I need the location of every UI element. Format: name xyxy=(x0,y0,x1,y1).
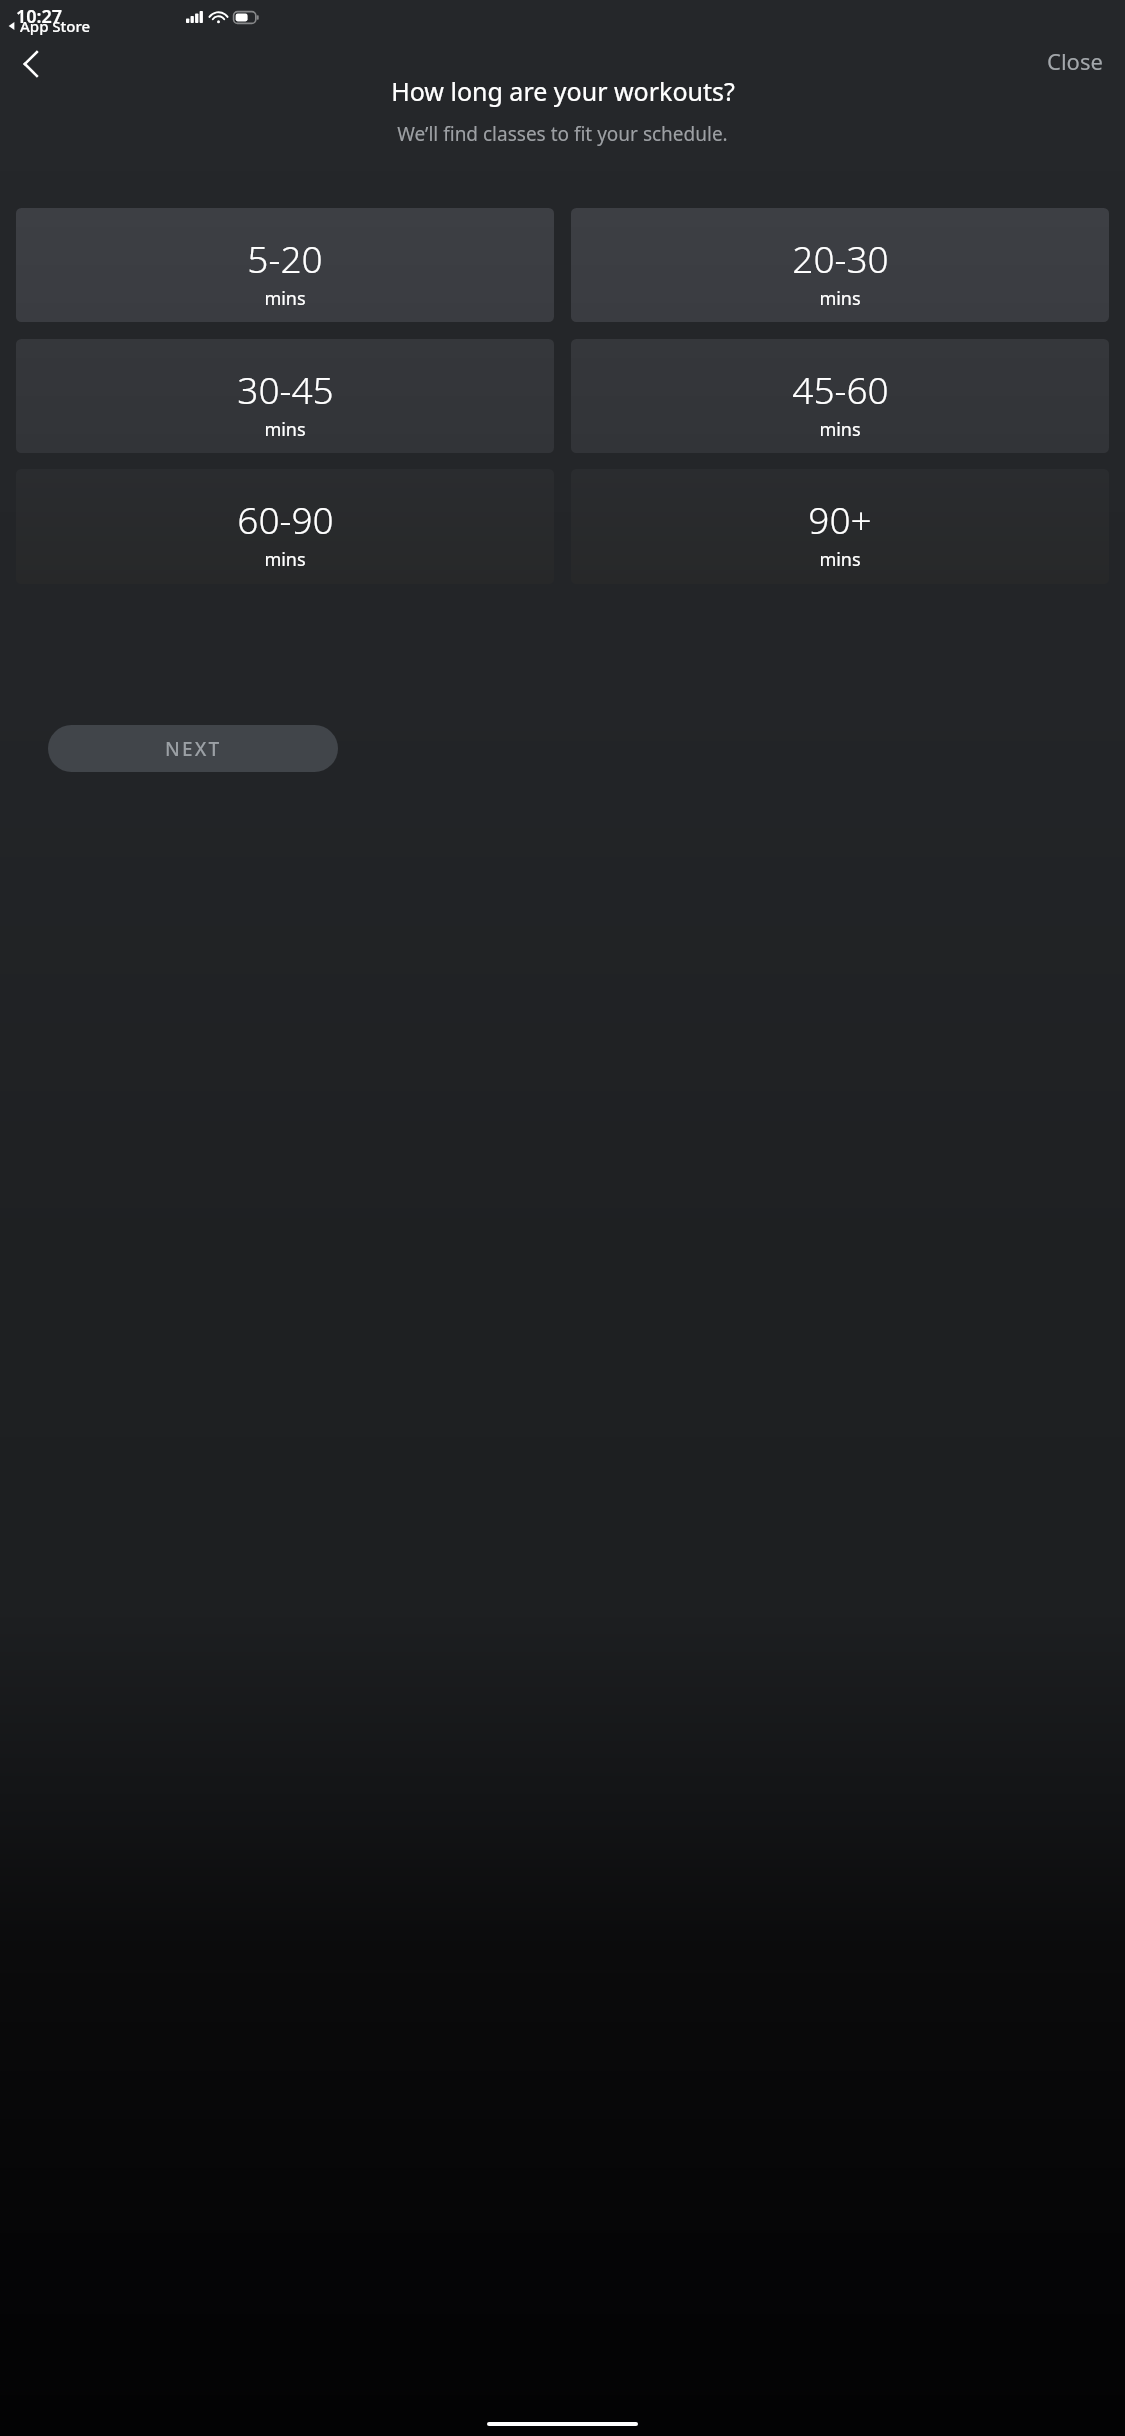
staticText: 10:27 xyxy=(16,4,63,29)
button[interactable]: NEXT xyxy=(48,725,338,772)
button[interactable]: 45-60 xyxy=(571,339,1109,453)
staticText: How long are your workouts? xyxy=(391,74,735,108)
staticText: 30-45 xyxy=(237,364,334,414)
button[interactable]: Close xyxy=(1035,36,1115,86)
button[interactable]: 20-30 xyxy=(571,208,1109,322)
button[interactable]: Back xyxy=(4,42,58,86)
staticText: 60-90 xyxy=(237,494,334,544)
staticText: mins xyxy=(819,417,861,442)
staticText: We’ll find classes to fit your schedule. xyxy=(397,121,728,147)
button[interactable]: 90+ xyxy=(571,469,1109,584)
staticText: Close xyxy=(1047,46,1103,76)
staticText: mins xyxy=(819,547,861,572)
staticText: 45-60 xyxy=(792,364,889,414)
button[interactable]: 5-20 xyxy=(16,208,554,322)
staticText: App Store xyxy=(20,16,91,36)
staticText: NEXT xyxy=(165,736,222,762)
staticText: 90+ xyxy=(808,494,872,544)
staticText: mins xyxy=(264,417,306,442)
staticText: mins xyxy=(819,286,861,311)
button[interactable]: 60-90 xyxy=(16,469,554,584)
staticText: mins xyxy=(264,547,306,572)
button[interactable]: 30-45 xyxy=(16,339,554,453)
staticText: 20-30 xyxy=(792,233,889,283)
staticText: mins xyxy=(264,286,306,311)
staticText: 5-20 xyxy=(247,233,323,283)
